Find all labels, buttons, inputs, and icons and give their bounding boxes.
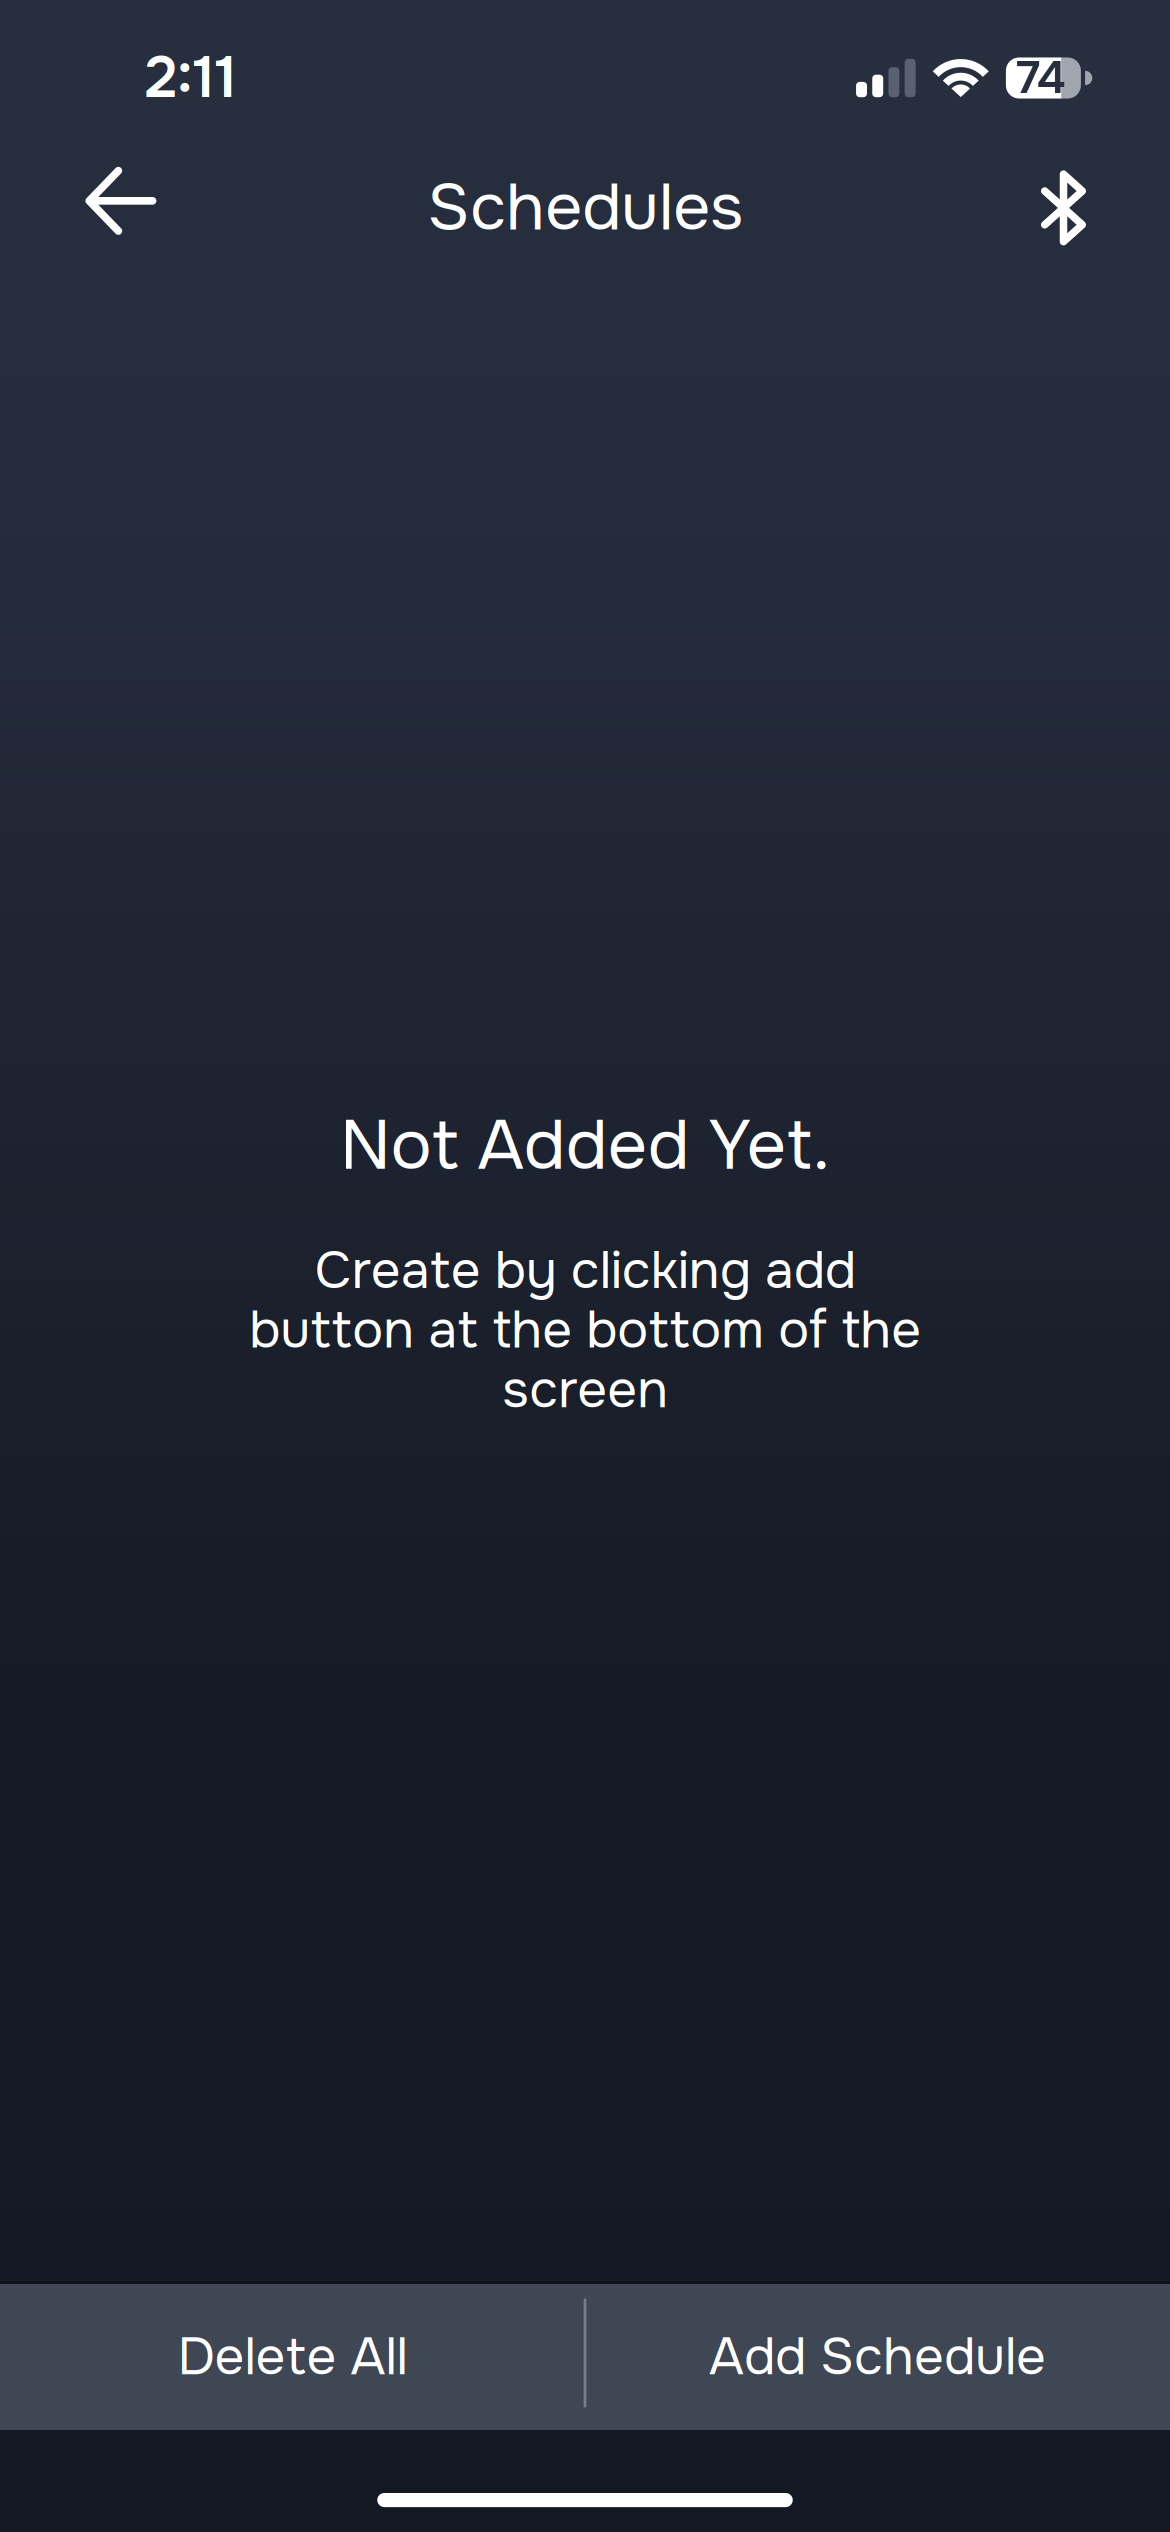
staticText: Not Added Yet. — [339, 1101, 830, 1190]
staticText: Schedules — [427, 166, 743, 250]
staticText: Delete All — [177, 2324, 407, 2390]
button[interactable]: Back — [43, 142, 199, 274]
staticText: Create by clicking add button at the bot… — [249, 1241, 921, 1420]
button[interactable]: Bluetooth — [985, 142, 1141, 274]
button[interactable]: Add Schedule — [585, 2284, 1170, 2430]
staticText: Add Schedule — [709, 2324, 1046, 2390]
staticText: 2:11 — [145, 41, 237, 115]
staticText: 74 — [1017, 49, 1066, 107]
button[interactable]: Delete All — [0, 2284, 585, 2430]
